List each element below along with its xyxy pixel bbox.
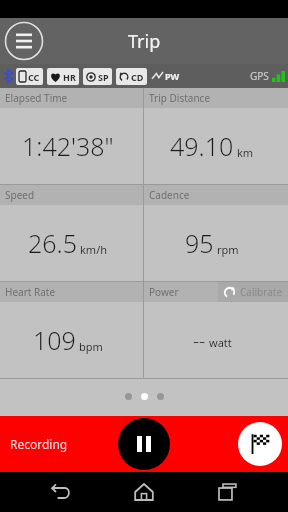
button[interactable]: HR [47, 68, 79, 85]
staticText: watt [209, 335, 232, 350]
staticText: GPS [250, 69, 269, 83]
staticText: PW [165, 70, 180, 82]
staticText: km [237, 145, 254, 160]
staticText: km/h [80, 242, 108, 257]
staticText: Power [149, 285, 179, 299]
button[interactable]: CC [16, 68, 43, 85]
staticText: Calibrate [240, 285, 283, 299]
staticText: 49.10 [170, 129, 234, 163]
button[interactable]: Pause [118, 418, 170, 470]
button[interactable]: Home [120, 472, 168, 512]
staticText: SP [98, 71, 109, 83]
staticText: Recording [10, 436, 68, 452]
staticText: Trip Distance [149, 91, 211, 105]
button[interactable]: Finish [238, 422, 282, 466]
button[interactable]: CD [116, 68, 147, 85]
button[interactable]: Back [36, 472, 84, 512]
staticText: 109 [33, 323, 76, 357]
staticText: 95 [185, 226, 214, 260]
button[interactable]: Recents [204, 472, 252, 512]
staticText: Cadence [149, 188, 190, 202]
staticText: CC [28, 71, 40, 83]
staticText: HR [63, 71, 76, 83]
staticText: rpm [217, 242, 239, 257]
staticText: bpm [79, 339, 103, 354]
staticText: CD [131, 71, 144, 83]
button[interactable]: Menu [4, 21, 44, 61]
staticText: -- [193, 327, 206, 353]
staticText: Elapsed Time [5, 91, 68, 105]
staticText: 26.5 [28, 226, 77, 260]
button[interactable]: Calibrate [218, 282, 288, 302]
staticText: Heart Rate [5, 285, 56, 299]
button[interactable]: SP [83, 68, 112, 85]
staticText: Speed [5, 188, 35, 202]
staticText: 1:42'38" [22, 129, 114, 163]
staticText: Trip [128, 29, 161, 54]
